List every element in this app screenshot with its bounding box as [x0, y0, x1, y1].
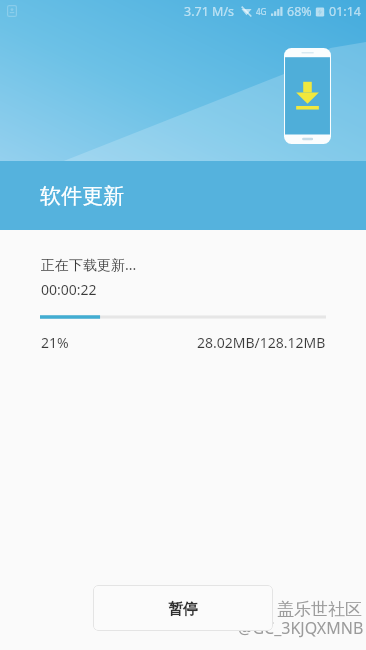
- staticText: 00:00:22: [41, 280, 97, 299]
- staticText: 暂停: [168, 600, 198, 619]
- staticText: 01:14: [329, 3, 361, 20]
- staticText: @GC_3KJQXMNB: [238, 617, 364, 639]
- staticText: 盖乐世社区: [277, 599, 362, 620]
- staticText: 软件更新: [40, 183, 124, 209]
- staticText: 21%: [41, 333, 69, 352]
- staticText: 68%: [287, 3, 312, 20]
- staticText: 3.71 M/s: [184, 3, 235, 20]
- staticText: 28.02MB/128.12MB: [197, 333, 326, 352]
- button[interactable]: 暂停: [93, 585, 273, 631]
- staticText: 正在下载更新...: [41, 255, 137, 274]
- staticText: 4G: [256, 6, 267, 17]
